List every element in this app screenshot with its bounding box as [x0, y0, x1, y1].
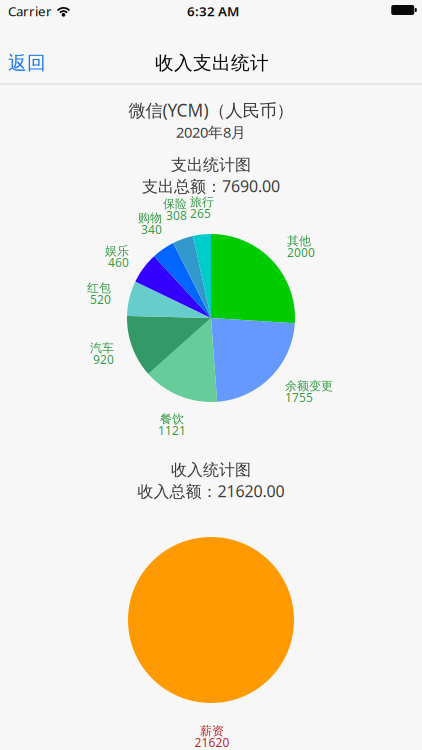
staticText: 1121	[158, 422, 186, 438]
staticText: 餐饮	[160, 412, 184, 426]
staticText: 2020年8月	[176, 122, 246, 142]
staticText: 21620	[194, 734, 229, 750]
staticText: 返回	[8, 51, 46, 74]
button[interactable]: 返回	[0, 43, 54, 83]
staticText: 收入统计图	[171, 460, 251, 480]
staticText: 920	[93, 351, 114, 367]
staticText: 6:32 AM	[187, 2, 239, 20]
staticText: 汽车	[90, 341, 114, 355]
staticText: 340	[141, 221, 162, 237]
staticText: 收入支出统计	[155, 51, 269, 74]
staticText: Carrier	[8, 2, 52, 20]
staticText: 收入总额：21620.00	[137, 480, 284, 502]
staticText: 支出总额：7690.00	[142, 175, 280, 197]
staticText: 旅行	[190, 195, 214, 209]
staticText: 520	[90, 291, 111, 307]
staticText: 其他	[287, 234, 311, 248]
staticText: 红包	[87, 281, 111, 295]
staticText: 460	[108, 254, 129, 270]
staticText: 2000	[287, 244, 315, 260]
staticText: 余额变更	[285, 379, 333, 393]
staticText: 308	[166, 207, 187, 223]
staticText: 265	[190, 205, 211, 221]
staticText: 购物	[138, 211, 162, 225]
staticText: 1755	[285, 389, 313, 405]
staticText: 娱乐	[105, 244, 129, 258]
staticText: 支出统计图	[171, 155, 251, 175]
staticText: 薪资	[200, 724, 224, 738]
staticText: 微信(YCM)（人民币）	[128, 98, 293, 121]
staticText: 保险	[163, 197, 187, 211]
